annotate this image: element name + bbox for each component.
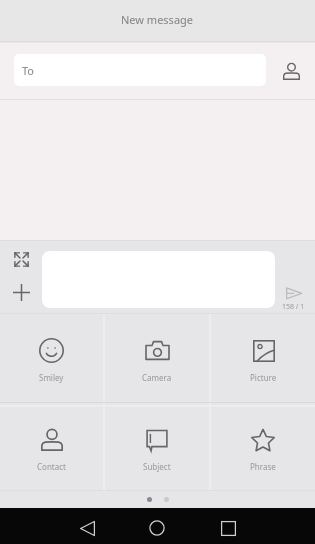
button[interactable]: Phrase	[211, 403, 315, 490]
staticText: Smiley	[39, 372, 64, 383]
staticText: Contact	[37, 461, 66, 472]
staticText: 158 / 1	[282, 302, 305, 312]
button[interactable]: Home	[139, 510, 175, 544]
button[interactable]: Picture	[211, 314, 315, 402]
button[interactable]: Subject	[105, 403, 209, 490]
staticText: Picture	[250, 372, 277, 383]
button[interactable]: Camera	[105, 314, 209, 402]
button[interactable]: Expand compose field	[9, 247, 33, 271]
button[interactable]: Add attachment	[9, 280, 33, 304]
button[interactable]: To	[14, 54, 266, 86]
staticText: Subject	[143, 461, 171, 472]
staticText: Camera	[142, 372, 172, 383]
button[interactable]: Send message	[274, 285, 313, 312]
staticText: Phrase	[250, 461, 276, 472]
button[interactable]: Back	[69, 510, 105, 544]
button[interactable]: Contact	[0, 403, 103, 490]
button[interactable]: Recent apps	[210, 510, 246, 544]
staticText: New message	[121, 12, 194, 27]
staticText: To	[22, 63, 35, 78]
button[interactable]: Choose contact	[273, 42, 309, 100]
button[interactable]: Smiley	[0, 314, 103, 402]
